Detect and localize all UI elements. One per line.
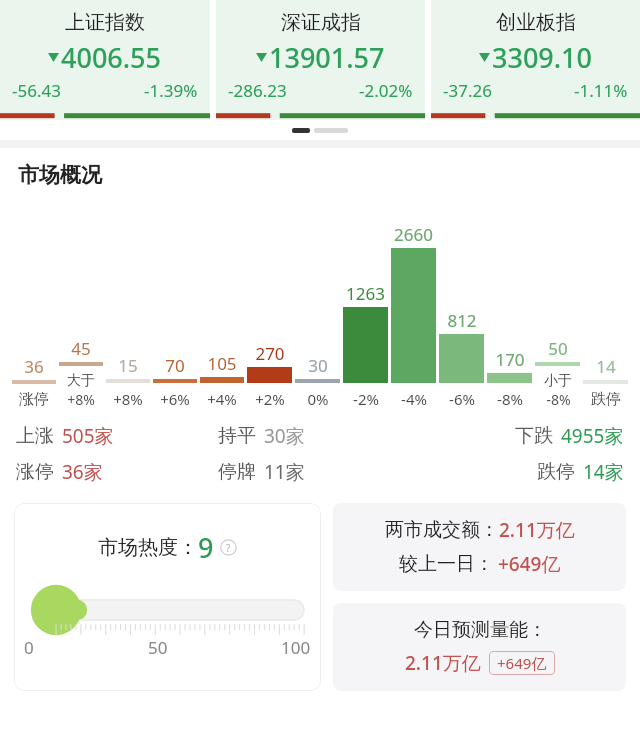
staticText: +2% [255, 389, 285, 409]
button[interactable]: 270 [247, 223, 292, 409]
button[interactable]: 70 [153, 223, 197, 409]
button[interactable]: 今日预测量能： [333, 603, 626, 691]
button[interactable]: 30 [295, 223, 340, 409]
button[interactable]: 812 [439, 223, 484, 409]
staticText: -8% [546, 390, 571, 409]
staticText: 上涨 [16, 424, 54, 448]
staticText: 70 [165, 354, 185, 377]
staticText: 1263 [346, 282, 385, 305]
staticText: -2.02% [359, 79, 413, 102]
staticText: 36家 [62, 459, 103, 485]
staticText: 创业板指 [496, 10, 576, 35]
staticText: 2.11万亿 [499, 517, 575, 543]
staticText: 涨停 [19, 390, 49, 409]
staticText: 3309.10 [492, 39, 593, 76]
staticText: 14 [596, 355, 616, 378]
staticText: +649亿 [497, 653, 547, 673]
staticText: 涨停 [16, 460, 54, 484]
staticText: 持平 [218, 424, 256, 448]
button[interactable]: 105 [200, 223, 244, 409]
staticText: 下跌 [515, 424, 553, 448]
staticText: 大于 [67, 372, 95, 390]
button[interactable]: 说明 [220, 539, 237, 556]
staticText: 2.11万亿 [405, 650, 481, 676]
staticText: 2660 [394, 223, 433, 246]
staticText: +8% [113, 389, 143, 409]
staticText: 0 [24, 636, 34, 659]
staticText: 15 [118, 354, 138, 377]
button[interactable]: 14 [583, 224, 628, 409]
staticText: 30家 [264, 423, 305, 449]
staticText: 170 [495, 348, 525, 371]
staticText: -8% [497, 389, 523, 409]
button[interactable]: 45 [59, 206, 103, 409]
staticText: 小于 [544, 372, 572, 390]
button[interactable]: 上证指数 [0, 0, 210, 120]
staticText: -1.39% [144, 79, 198, 102]
staticText: 50 [548, 337, 568, 360]
staticText: 812 [447, 309, 477, 332]
staticText: -56.43 [12, 79, 61, 102]
staticText: 上证指数 [65, 10, 145, 35]
button[interactable]: 2660 [391, 223, 436, 409]
staticText: 50 [148, 636, 168, 659]
staticText: -37.26 [443, 79, 492, 102]
staticText: -6% [449, 389, 475, 409]
staticText: +649亿 [498, 551, 561, 577]
staticText: 两市成交额： [385, 518, 499, 542]
staticText: 市场热度： [98, 535, 198, 560]
staticText: 30 [308, 354, 328, 377]
staticText: 100 [281, 636, 311, 659]
button[interactable]: 170 [487, 223, 532, 409]
button[interactable]: 36 [12, 224, 56, 409]
button[interactable]: 创业板指 [431, 0, 640, 120]
staticText: -4% [401, 389, 427, 409]
staticText: 14家 [583, 459, 624, 485]
button[interactable]: 15 [106, 223, 150, 409]
staticText: 停牌 [218, 460, 256, 484]
button[interactable]: 深证成指 [216, 0, 425, 120]
staticText: 今日预测量能： [414, 618, 547, 642]
staticText: 跌停 [537, 460, 575, 484]
button[interactable]: 50 [535, 206, 580, 409]
staticText: 105 [207, 352, 237, 375]
staticText: -1.11% [574, 79, 628, 102]
staticText: +8% [67, 390, 95, 409]
staticText: 较上一日： [399, 552, 494, 576]
staticText: 跌停 [591, 390, 621, 409]
staticText: 45 [71, 337, 91, 360]
staticText: 市场概况 [18, 162, 102, 188]
staticText: 11家 [264, 459, 305, 485]
button[interactable]: 市场热度： [14, 503, 321, 691]
staticText: 9 [198, 529, 214, 566]
staticText: +4% [207, 389, 237, 409]
staticText: 13901.57 [269, 39, 385, 76]
staticText: ? [226, 541, 231, 555]
staticText: 0% [307, 389, 329, 409]
button[interactable]: 1263 [343, 223, 388, 409]
staticText: 深证成指 [281, 10, 361, 35]
staticText: 36 [24, 355, 44, 378]
staticText: +6% [160, 389, 190, 409]
staticText: 270 [255, 342, 285, 365]
button[interactable]: 两市成交额： [333, 503, 626, 591]
staticText: 4006.55 [61, 39, 162, 76]
staticText: 4955家 [561, 423, 624, 449]
staticText: -2% [353, 389, 379, 409]
staticText: -286.23 [228, 79, 287, 102]
staticText: 505家 [62, 423, 114, 449]
